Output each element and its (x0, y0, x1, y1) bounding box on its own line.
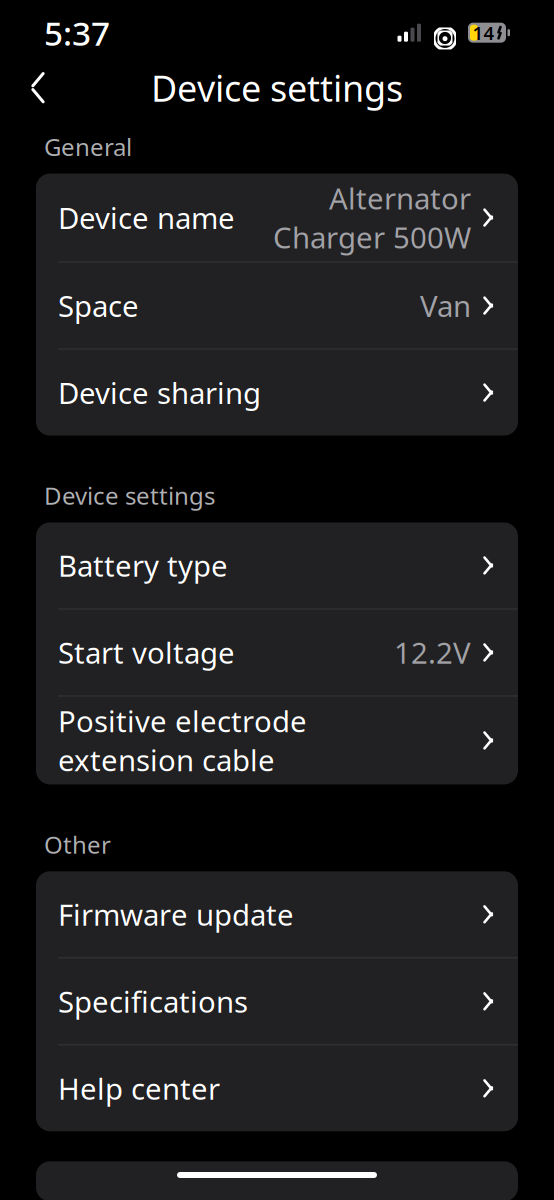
staticText: Positive electrode extension cable (58, 701, 307, 779)
staticText: General (44, 131, 132, 163)
button[interactable]: Specifications (36, 958, 518, 1044)
staticText: Device name (58, 198, 235, 237)
button[interactable]: Space (36, 263, 518, 349)
staticText: Start voltage (58, 633, 235, 672)
staticText: Battery type (58, 546, 228, 585)
staticText: Other (44, 828, 111, 860)
staticText: 5:37 (44, 11, 110, 55)
button[interactable]: Start voltage (36, 609, 518, 695)
button[interactable]: Firmware update (36, 871, 518, 957)
button[interactable]: Help center (36, 1045, 518, 1131)
staticText: Van (419, 286, 470, 325)
staticText: Help center (58, 1069, 220, 1108)
staticText: 12.2V (393, 633, 470, 672)
button[interactable]: Device name (36, 174, 518, 262)
staticText: 14 (472, 20, 494, 45)
staticText: Device settings (44, 480, 215, 511)
staticText: Specifications (58, 982, 248, 1021)
staticText: Space (58, 286, 139, 325)
staticText: Firmware update (58, 895, 294, 934)
staticText: Device settings (151, 64, 403, 112)
button[interactable]: Battery type (36, 522, 518, 608)
staticText: Alternator Charger 500W (272, 179, 470, 256)
button[interactable]: Device sharing (36, 350, 518, 436)
staticText: Device sharing (58, 373, 261, 412)
button[interactable]: Positive electrode extension cable (36, 696, 518, 784)
button[interactable]: Back (12, 62, 64, 114)
